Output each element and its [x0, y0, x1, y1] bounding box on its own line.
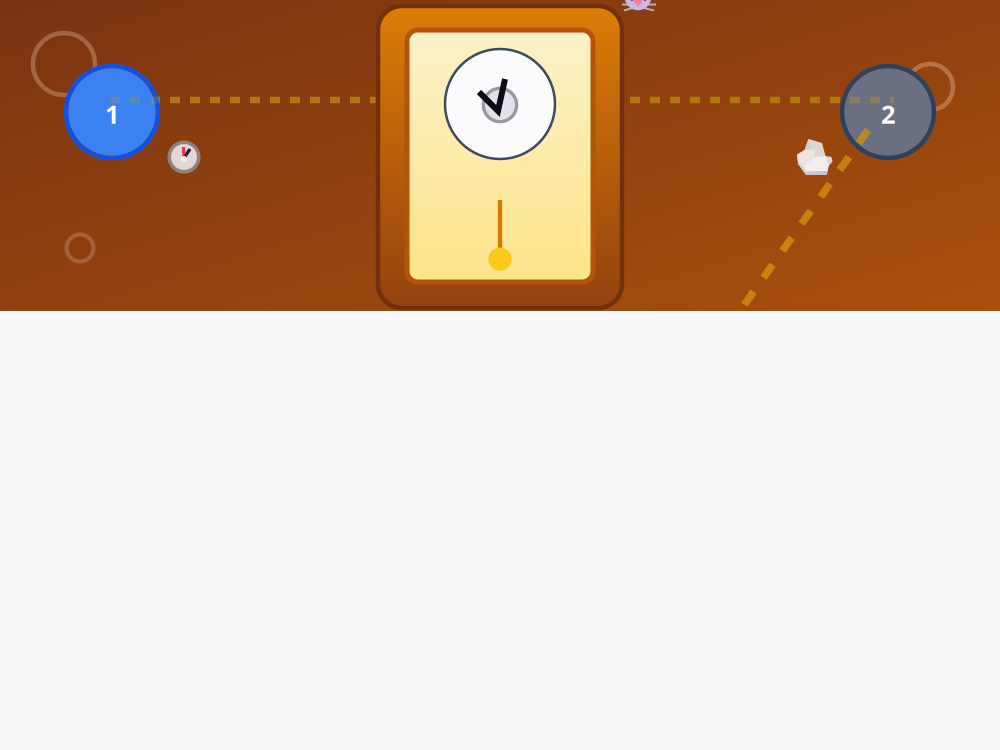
staticText: 1: [105, 97, 119, 131]
button[interactable]: 1: [0, 0, 1000, 311]
staticText: 2: [881, 97, 895, 131]
button[interactable]: 2: [0, 0, 1000, 311]
